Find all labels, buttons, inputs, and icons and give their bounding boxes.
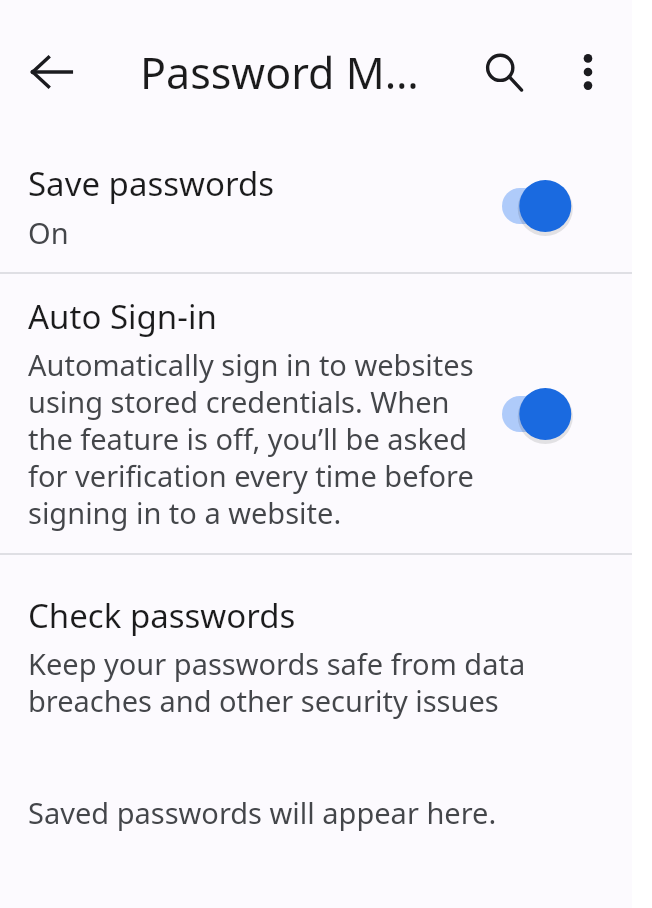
staticText: Automatically sign in to websites using … xyxy=(28,345,488,533)
button[interactable]: Toggle xyxy=(502,170,598,242)
button[interactable]: Toggle xyxy=(502,378,598,450)
button[interactable]: Navigate up xyxy=(10,30,94,114)
staticText: Saved passwords will appear here. xyxy=(28,793,497,832)
staticText: Save passwords xyxy=(28,161,274,206)
staticText: Check passwords xyxy=(28,593,296,638)
button[interactable]: Check passwords xyxy=(0,555,632,741)
button[interactable]: Save passwords xyxy=(0,140,632,272)
button[interactable]: Auto Sign-in xyxy=(0,274,632,553)
staticText: Password M… xyxy=(140,43,419,102)
button[interactable]: Search xyxy=(462,30,546,114)
staticText: Keep your passwords safe from data breac… xyxy=(28,644,604,721)
staticText: On xyxy=(28,213,69,252)
staticText: Auto Sign-in xyxy=(28,294,217,339)
button[interactable]: More options xyxy=(546,30,630,114)
